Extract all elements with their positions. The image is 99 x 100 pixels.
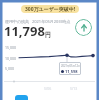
staticText: 円 (45, 31, 51, 39)
staticText: 11,798 (4, 22, 45, 40)
staticText: 10,000 (5, 56, 16, 61)
staticText: 5/06 (44, 86, 52, 91)
button[interactable]: 増加 (75, 19, 92, 36)
button[interactable]: タブ (15, 95, 28, 100)
staticText: 5/13 (70, 86, 78, 91)
staticText: 2021年05月20日時点 (32, 19, 71, 24)
staticText: 300万ユーザー突破中! (25, 6, 76, 13)
button[interactable]: 300万ユーザー突破中! (21, 5, 79, 13)
staticText: 11,598 (65, 69, 78, 74)
staticText: 2021年05月12日 (61, 64, 81, 68)
staticText: 15,000 (5, 45, 16, 50)
staticText: 運用中の残高 (5, 19, 30, 24)
staticText: 5,000 (5, 66, 14, 71)
